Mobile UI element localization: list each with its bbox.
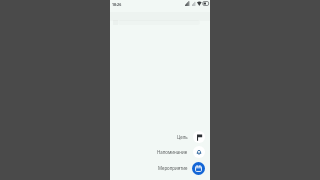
staticText: Цель [177, 134, 188, 140]
staticText: Напоминание [157, 149, 188, 155]
staticText: 18:26 [112, 2, 122, 7]
button[interactable]: Цель [193, 131, 205, 143]
button[interactable]: Напоминание [193, 146, 205, 158]
staticText: Мероприятие [158, 165, 188, 171]
button[interactable]: Мероприятие [192, 162, 205, 175]
